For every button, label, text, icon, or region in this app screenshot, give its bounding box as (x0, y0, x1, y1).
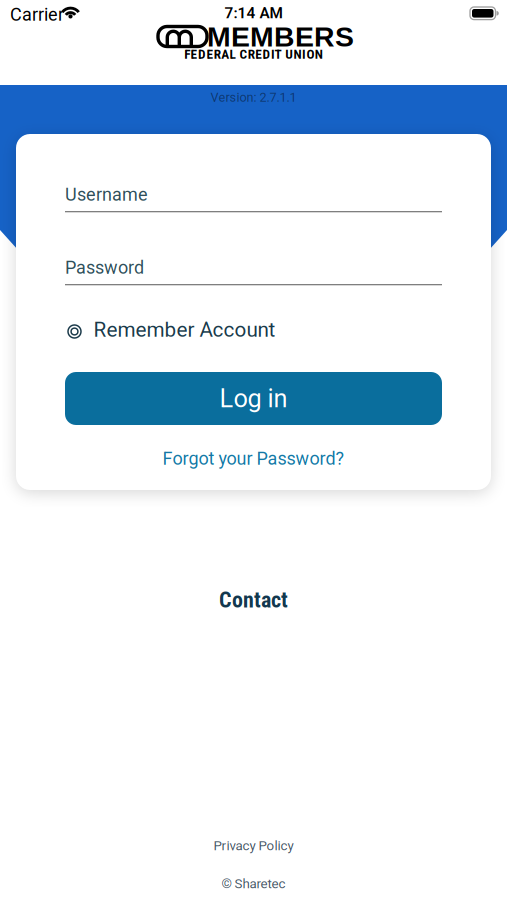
staticText: Remember Account (93, 317, 275, 342)
staticText: Carrier (10, 4, 64, 25)
staticText: Version: 2.7.1.1 (210, 90, 296, 105)
staticText: © Sharetec (221, 876, 285, 892)
staticText: Privacy Policy (213, 838, 293, 854)
staticText: Log in (219, 384, 287, 413)
staticText: Password (65, 257, 144, 278)
staticText: MEMBERS (207, 21, 354, 52)
staticText: Contact (219, 587, 288, 613)
staticText: 7:14 AM (224, 4, 282, 22)
staticText: FEDERAL CREDIT UNION (184, 46, 323, 62)
staticText: Username (65, 184, 148, 205)
staticText: Forgot your Password? (162, 448, 344, 469)
